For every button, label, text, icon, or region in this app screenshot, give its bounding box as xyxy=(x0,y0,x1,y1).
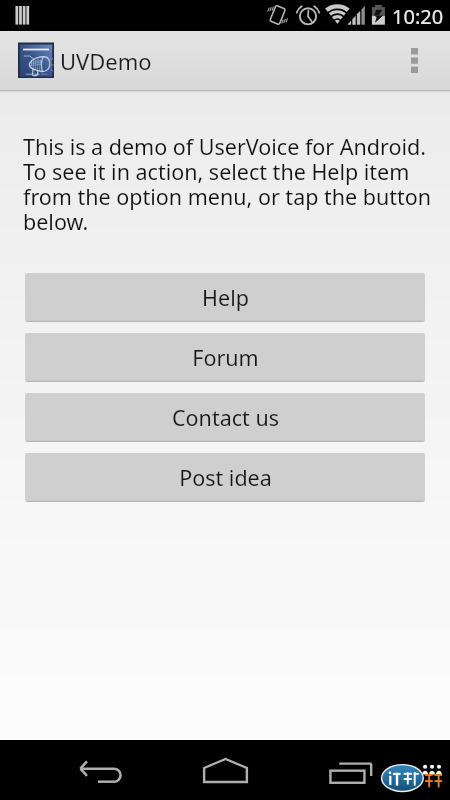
button[interactable]: Post idea xyxy=(25,453,425,502)
staticText: 10:20 xyxy=(392,3,444,30)
button[interactable]: Home xyxy=(185,740,265,800)
button[interactable]: Forum xyxy=(25,333,425,382)
staticText: Help xyxy=(202,283,249,312)
staticText: Contact us xyxy=(172,403,279,432)
button[interactable]: Back xyxy=(60,742,140,800)
button[interactable]: More options xyxy=(405,31,450,90)
button[interactable]: Contact us xyxy=(25,393,425,442)
staticText: UVDemo xyxy=(60,46,152,76)
staticText: Post idea xyxy=(179,463,272,492)
staticText: This is a demo of UserVoice for Android.… xyxy=(23,132,432,236)
staticText: Forum xyxy=(192,343,259,372)
button[interactable]: Help xyxy=(25,273,425,322)
button[interactable]: Recent apps xyxy=(311,742,391,800)
